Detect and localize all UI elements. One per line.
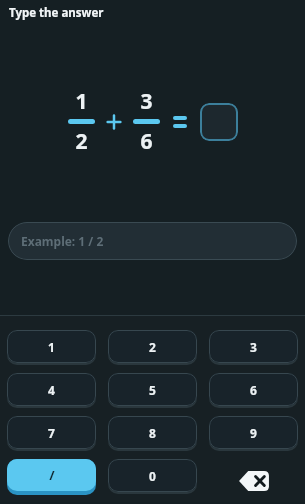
staticText: 0 bbox=[149, 468, 156, 484]
button[interactable]: Backspace bbox=[209, 459, 298, 502]
staticText: 3 bbox=[250, 339, 257, 355]
button[interactable]: 0 bbox=[108, 459, 197, 492]
staticText: 7 bbox=[48, 425, 55, 441]
staticText: 1 bbox=[75, 87, 88, 116]
staticText: 8 bbox=[149, 425, 156, 441]
staticText: / bbox=[49, 466, 55, 484]
staticText: 9 bbox=[250, 425, 257, 441]
staticText: 2 bbox=[149, 339, 156, 355]
button[interactable]: / bbox=[7, 459, 96, 491]
staticText: 6 bbox=[250, 382, 257, 398]
button[interactable]: Example: 1 / 2 bbox=[8, 222, 297, 260]
staticText: 5 bbox=[149, 382, 156, 398]
button[interactable]: Answer bbox=[200, 103, 238, 141]
button[interactable]: 3 bbox=[209, 330, 298, 363]
button[interactable]: 2 bbox=[108, 330, 197, 363]
button[interactable]: 7 bbox=[7, 416, 96, 449]
button[interactable]: 6 bbox=[209, 373, 298, 406]
staticText: 3 bbox=[140, 87, 153, 116]
staticText: 6 bbox=[140, 127, 153, 156]
staticText: 2 bbox=[75, 127, 88, 156]
button[interactable]: 4 bbox=[7, 373, 96, 406]
staticText: Type the answer bbox=[9, 5, 104, 21]
staticText: 4 bbox=[48, 382, 55, 398]
staticText: 1 bbox=[48, 339, 55, 355]
button[interactable]: 9 bbox=[209, 416, 298, 449]
staticText: Example: 1 / 2 bbox=[21, 233, 104, 249]
button[interactable]: 8 bbox=[108, 416, 197, 449]
button[interactable]: 1 bbox=[7, 330, 96, 363]
button[interactable]: 5 bbox=[108, 373, 197, 406]
